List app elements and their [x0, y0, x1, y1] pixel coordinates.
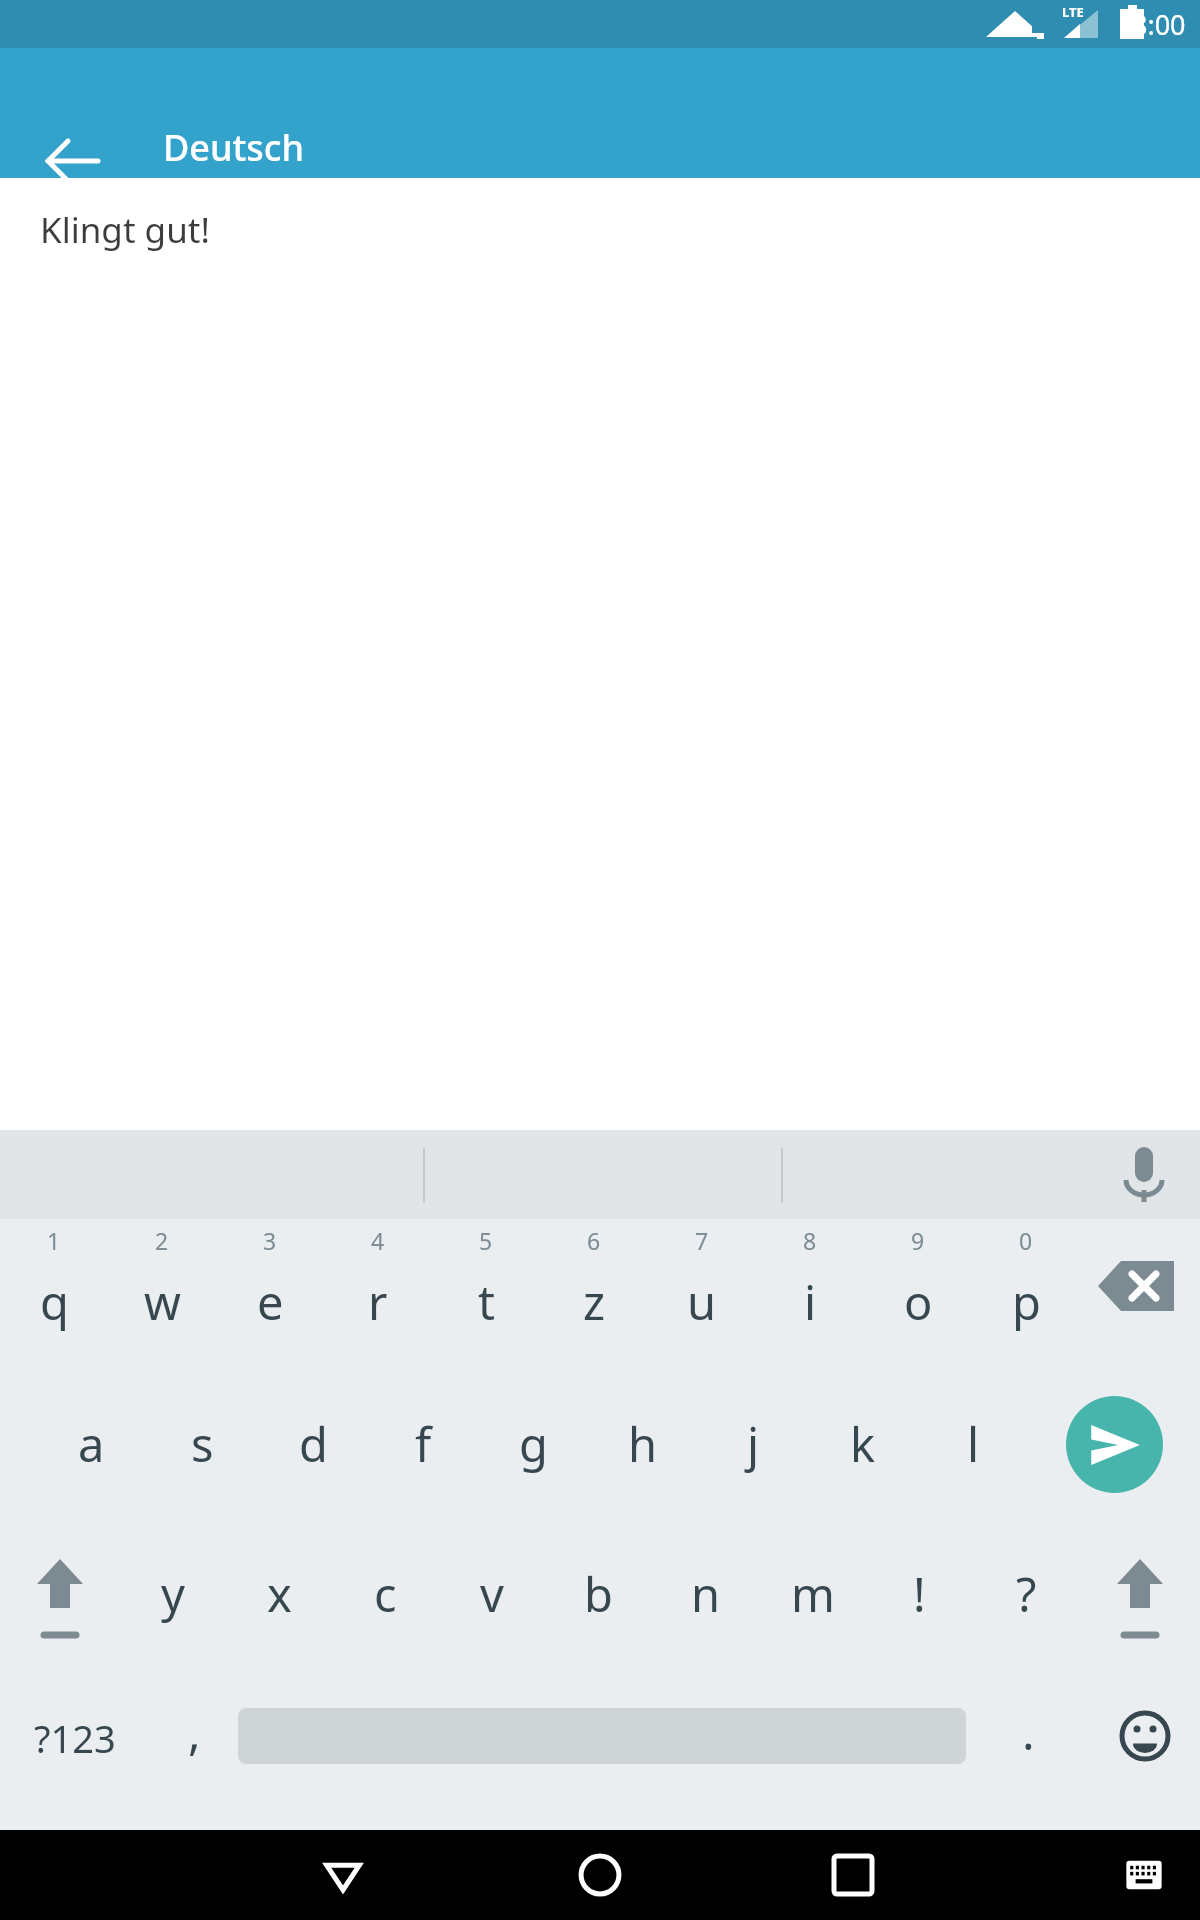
button[interactable]: 2 [108, 1219, 216, 1369]
button[interactable]: x [226, 1519, 332, 1669]
staticText: d [299, 1412, 328, 1476]
button[interactable]: Send [1028, 1369, 1200, 1519]
button[interactable]: 3 [216, 1219, 324, 1369]
button[interactable]: Switch keyboard [1104, 1835, 1184, 1915]
staticText: s [191, 1412, 214, 1476]
button[interactable]: 9 [864, 1219, 972, 1369]
button[interactable]: c [332, 1519, 438, 1669]
button[interactable]: l [918, 1369, 1028, 1519]
button[interactable]: s [147, 1369, 258, 1519]
staticText: 2 [155, 1225, 169, 1256]
staticText: b [584, 1562, 613, 1626]
staticText: m [791, 1562, 835, 1626]
button[interactable]: d [258, 1369, 368, 1519]
staticText: Deutsch [163, 123, 305, 172]
button[interactable]: f [368, 1369, 478, 1519]
button[interactable]: g [478, 1369, 588, 1519]
staticText: i [804, 1270, 817, 1334]
staticText: n [691, 1562, 721, 1626]
staticText: 4 [371, 1225, 385, 1256]
button[interactable]: j [698, 1369, 808, 1519]
staticText: q [40, 1270, 69, 1334]
staticText: y [161, 1562, 185, 1626]
button[interactable]: ? [973, 1519, 1080, 1669]
button[interactable]: Back [25, 113, 121, 209]
button[interactable]: Backspace [1080, 1219, 1200, 1369]
button[interactable]: Recents [808, 1830, 898, 1920]
button[interactable]: ?123 [0, 1669, 150, 1819]
staticText: o [904, 1270, 933, 1334]
button[interactable]: 5 [432, 1219, 540, 1369]
staticText: j [747, 1412, 760, 1476]
button[interactable]: Emoji [1090, 1669, 1200, 1819]
button[interactable]: m [759, 1519, 866, 1669]
staticText: 7 [695, 1225, 709, 1256]
button[interactable]: h [588, 1369, 698, 1519]
staticText: 1 [47, 1225, 61, 1256]
button[interactable]: 8 [756, 1219, 864, 1369]
staticText: 8 [803, 1225, 817, 1256]
button[interactable]: b [545, 1519, 652, 1669]
staticText: 6 [587, 1225, 601, 1256]
staticText: z [583, 1270, 606, 1334]
button[interactable]: 7 [648, 1219, 756, 1369]
staticText: v [480, 1562, 504, 1626]
button[interactable]: 6 [540, 1219, 648, 1369]
button[interactable]: Home [555, 1830, 645, 1920]
staticText: ?123 [34, 1712, 116, 1764]
staticText: 0 [1019, 1225, 1033, 1256]
button[interactable]: Shift [1080, 1519, 1200, 1669]
staticText: x [267, 1562, 292, 1626]
button[interactable]: v [438, 1519, 545, 1669]
staticText: a [78, 1412, 105, 1476]
button[interactable]: . [966, 1669, 1090, 1819]
staticText: ! [913, 1562, 926, 1626]
staticText: ? [1016, 1562, 1037, 1626]
button[interactable]: , [150, 1669, 238, 1819]
staticText: LTE [1062, 3, 1084, 21]
staticText: 3 [263, 1225, 277, 1256]
staticText: p [1012, 1270, 1041, 1334]
button[interactable]: a [36, 1369, 147, 1519]
staticText: Klingt gut! [40, 206, 210, 254]
staticText: u [687, 1270, 717, 1334]
staticText: e [257, 1270, 284, 1334]
button[interactable]: Space [238, 1669, 966, 1819]
staticText: . [1022, 1700, 1035, 1764]
staticText: , [188, 1700, 201, 1764]
staticText: 8:00 [1132, 6, 1186, 43]
button[interactable]: n [652, 1519, 759, 1669]
staticText: k [850, 1412, 876, 1476]
staticText: 5 [479, 1225, 493, 1256]
button[interactable]: k [808, 1369, 918, 1519]
staticText: h [628, 1412, 658, 1476]
staticText: t [478, 1270, 495, 1334]
staticText: 9 [911, 1225, 925, 1256]
staticText: f [415, 1412, 432, 1476]
button[interactable]: y [120, 1519, 226, 1669]
button[interactable]: Shift [0, 1519, 120, 1669]
staticText: l [967, 1412, 980, 1476]
staticText: g [519, 1412, 548, 1476]
staticText: r [368, 1270, 388, 1334]
staticText: w [144, 1270, 181, 1334]
button[interactable]: Voice input [1108, 1139, 1180, 1211]
button[interactable]: 4 [324, 1219, 432, 1369]
button[interactable]: ! [866, 1519, 973, 1669]
button[interactable]: 0 [972, 1219, 1080, 1369]
button[interactable]: Back [298, 1830, 388, 1920]
button[interactable]: 1 [0, 1219, 108, 1369]
staticText: c [374, 1562, 397, 1626]
